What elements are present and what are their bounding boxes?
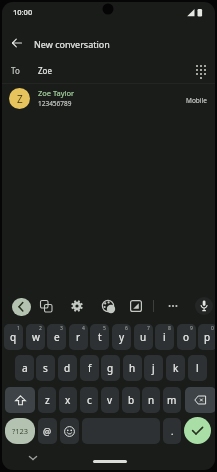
button[interactable]: g bbox=[101, 355, 120, 381]
button[interactable] bbox=[195, 297, 213, 315]
staticText: l bbox=[196, 361, 199, 375]
staticText: z bbox=[45, 393, 50, 407]
staticText: Mobile bbox=[186, 96, 207, 105]
staticText: e bbox=[54, 330, 60, 344]
button[interactable]: b bbox=[122, 387, 140, 413]
button[interactable]: l bbox=[188, 355, 207, 381]
staticText: p bbox=[204, 330, 211, 344]
staticText: 3 bbox=[60, 325, 63, 332]
button[interactable]: m bbox=[163, 387, 181, 413]
button[interactable]: s bbox=[36, 355, 55, 381]
button[interactable]: r bbox=[69, 324, 88, 350]
button[interactable] bbox=[5, 387, 35, 413]
button[interactable]: u bbox=[134, 324, 153, 350]
staticText: 2 bbox=[39, 325, 42, 332]
button[interactable] bbox=[128, 298, 144, 314]
button[interactable]: i bbox=[155, 324, 174, 350]
button[interactable]: j bbox=[144, 355, 163, 381]
button[interactable]: e bbox=[47, 324, 66, 350]
staticText: Z bbox=[17, 92, 23, 106]
staticText: 6 bbox=[125, 325, 128, 332]
staticText: j bbox=[152, 361, 155, 375]
staticText: h bbox=[129, 361, 136, 375]
button[interactable] bbox=[184, 417, 211, 444]
button[interactable]: Z bbox=[2, 84, 215, 116]
button[interactable]: c bbox=[80, 387, 98, 413]
staticText: u bbox=[140, 330, 147, 344]
button[interactable] bbox=[60, 418, 79, 444]
staticText: . bbox=[171, 425, 174, 437]
button[interactable]: w bbox=[26, 324, 45, 350]
staticText: 1 bbox=[17, 325, 20, 332]
staticText: o bbox=[183, 330, 190, 344]
staticText: m bbox=[167, 393, 177, 407]
button[interactable]: d bbox=[58, 355, 77, 381]
button[interactable] bbox=[100, 298, 116, 314]
staticText: i bbox=[163, 330, 166, 344]
staticText: Zoe Taylor bbox=[38, 88, 75, 98]
button[interactable]: n bbox=[142, 387, 160, 413]
staticText: New conversation bbox=[34, 38, 110, 50]
button[interactable]: ?123 bbox=[5, 418, 35, 444]
staticText: Zoe bbox=[38, 65, 52, 76]
button[interactable] bbox=[6, 32, 28, 54]
staticText: f bbox=[88, 361, 92, 375]
staticText: q bbox=[10, 330, 17, 344]
button[interactable]: x bbox=[59, 387, 77, 413]
button[interactable] bbox=[165, 298, 181, 314]
button[interactable]: z bbox=[38, 387, 56, 413]
staticText: y bbox=[119, 330, 125, 344]
button[interactable]: k bbox=[166, 355, 185, 381]
staticText: 9 bbox=[190, 325, 193, 332]
staticText: t bbox=[98, 330, 102, 344]
button[interactable] bbox=[12, 298, 31, 316]
button[interactable]: a bbox=[15, 355, 34, 381]
staticText: 8 bbox=[168, 325, 171, 332]
staticText: d bbox=[64, 361, 71, 375]
staticText: g bbox=[107, 361, 114, 375]
button[interactable]: f bbox=[80, 355, 99, 381]
button[interactable]: @ bbox=[38, 418, 57, 444]
staticText: ?123 bbox=[12, 426, 29, 436]
staticText: 0 bbox=[211, 325, 214, 332]
button[interactable]: q bbox=[4, 324, 23, 350]
button[interactable]: To bbox=[2, 57, 215, 83]
button[interactable]: t bbox=[90, 324, 109, 350]
staticText: 123456789 bbox=[38, 99, 72, 108]
staticText: 7 bbox=[147, 325, 150, 332]
staticText: @ bbox=[43, 425, 52, 437]
button[interactable]: h bbox=[123, 355, 142, 381]
button[interactable]: p bbox=[198, 324, 215, 350]
staticText: To bbox=[11, 65, 20, 76]
staticText: s bbox=[43, 361, 48, 375]
button[interactable] bbox=[69, 298, 85, 314]
staticText: 5 bbox=[103, 325, 106, 332]
staticText: w bbox=[32, 330, 40, 344]
staticText: n bbox=[148, 393, 155, 407]
staticText: c bbox=[87, 393, 92, 407]
staticText: b bbox=[128, 393, 135, 407]
staticText: 4 bbox=[82, 325, 85, 332]
button[interactable]: o bbox=[177, 324, 196, 350]
staticText: k bbox=[173, 361, 179, 375]
staticText: r bbox=[76, 330, 81, 344]
staticText: x bbox=[65, 393, 71, 407]
button[interactable]: v bbox=[101, 387, 119, 413]
staticText: 10:00 bbox=[13, 7, 33, 17]
button[interactable]: y bbox=[112, 324, 131, 350]
staticText: a bbox=[22, 361, 28, 375]
button[interactable]: . bbox=[163, 418, 181, 444]
button[interactable] bbox=[185, 387, 215, 413]
staticText: v bbox=[107, 393, 113, 407]
button[interactable] bbox=[38, 298, 54, 314]
